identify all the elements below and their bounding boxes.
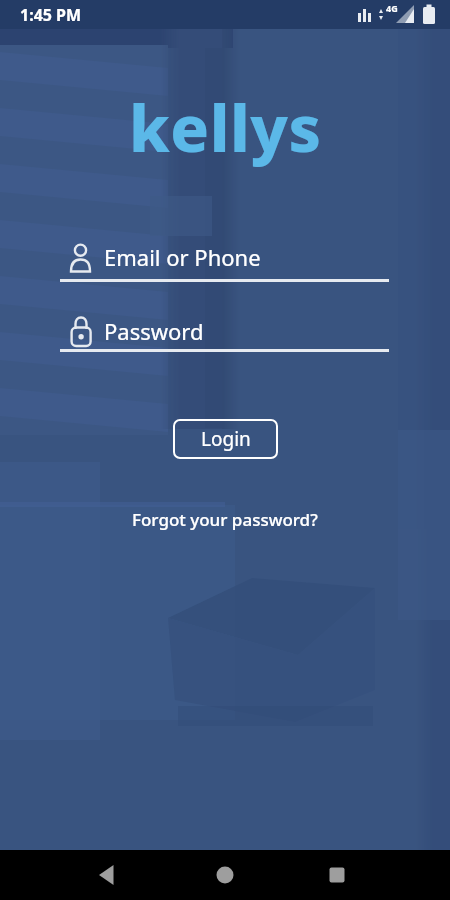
staticText: Login — [201, 426, 251, 452]
button[interactable] — [190, 850, 260, 900]
button[interactable] — [302, 850, 372, 900]
button[interactable]: Email or Phone — [60, 238, 389, 282]
staticText: 1:45 PM — [20, 4, 82, 26]
staticText: Forgot your password? — [132, 508, 318, 531]
button[interactable]: Login — [173, 419, 278, 459]
staticText: Password — [104, 316, 204, 346]
staticText: Email or Phone — [104, 242, 261, 272]
staticText: 4G — [386, 2, 398, 14]
button[interactable]: Forgot your password? — [132, 508, 318, 531]
staticText: kellys — [129, 84, 322, 171]
button[interactable] — [72, 850, 142, 900]
button[interactable]: Password — [60, 310, 389, 352]
